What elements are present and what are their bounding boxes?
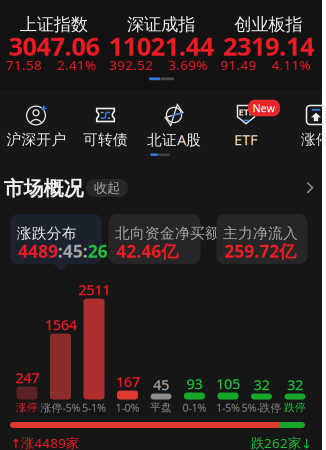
staticText: 跌停 xyxy=(284,401,306,414)
button[interactable]: 涨停 xyxy=(0,90,322,164)
staticText: 平盘 xyxy=(150,401,172,414)
staticText: 2511 xyxy=(78,280,110,299)
staticText: 涨停 xyxy=(301,130,326,148)
staticText: New xyxy=(252,101,275,115)
staticText: 0-1% xyxy=(182,400,206,415)
staticText: 247 xyxy=(15,368,39,387)
staticText: 2.41% xyxy=(57,56,96,74)
staticText: 3047.06 xyxy=(8,29,99,63)
staticText: 93 xyxy=(186,374,202,393)
staticText: 跌262家↓ xyxy=(251,434,312,450)
staticText: 32 xyxy=(253,375,269,394)
staticText: 259.72亿 xyxy=(224,239,296,262)
staticText: 91.49 xyxy=(220,56,256,74)
staticText: ↑涨4489家 xyxy=(10,434,79,450)
button[interactable]: 可转债 xyxy=(0,90,322,164)
staticText: 涨停-5% xyxy=(40,400,80,415)
staticText: 市场概况 xyxy=(3,176,83,201)
staticText: 1-0% xyxy=(115,400,139,415)
staticText: 深证成指 xyxy=(127,14,195,35)
staticText: 北证A股 xyxy=(147,130,201,149)
staticText: 创业板指 xyxy=(234,14,302,35)
staticText: 71.58 xyxy=(6,56,42,74)
button[interactable]: 收起 xyxy=(0,164,322,450)
staticText: 105 xyxy=(216,374,240,393)
staticText: 1564 xyxy=(44,315,76,334)
button[interactable]: 北向资金净买额 xyxy=(115,214,207,264)
button[interactable]: ETF xyxy=(0,90,322,164)
staticText: 涨停 xyxy=(16,401,38,414)
staticText: 1-5% xyxy=(216,400,240,415)
staticText: 可转债 xyxy=(83,130,128,148)
button[interactable]: 沪深开户 xyxy=(0,90,322,164)
staticText: 主力净流入 xyxy=(223,224,298,242)
staticText: 收起 xyxy=(94,180,120,196)
staticText: 11021.44 xyxy=(108,29,213,63)
staticText: 5%-跌停 xyxy=(241,400,281,415)
staticText: 3.69% xyxy=(168,56,207,74)
staticText: 5-1% xyxy=(82,400,106,415)
staticText: 262 xyxy=(88,239,118,262)
staticText: 沪深开户 xyxy=(6,130,66,148)
staticText: 4489 xyxy=(18,239,58,262)
staticText: 2319.14 xyxy=(223,29,314,63)
staticText: :45: xyxy=(58,239,88,262)
staticText: 涨跌分布 xyxy=(17,224,77,242)
staticText: 上证指数 xyxy=(20,14,88,35)
button[interactable]: More market overview xyxy=(0,164,322,450)
staticText: 392.52 xyxy=(109,56,153,74)
staticText: 42.46亿 xyxy=(116,239,178,262)
staticText: 北向资金净买额 xyxy=(115,224,220,242)
staticText: 4.11% xyxy=(271,56,310,74)
staticText: 32 xyxy=(287,375,303,394)
button[interactable]: 主力净流入 xyxy=(216,214,307,264)
staticText: 167 xyxy=(115,372,139,391)
staticText: ETF xyxy=(238,106,253,118)
button[interactable]: 北证A股 xyxy=(0,90,322,164)
staticText: ETF xyxy=(234,130,258,149)
staticText: 45 xyxy=(153,375,169,394)
button[interactable]: 涨跌分布 xyxy=(14,214,106,264)
